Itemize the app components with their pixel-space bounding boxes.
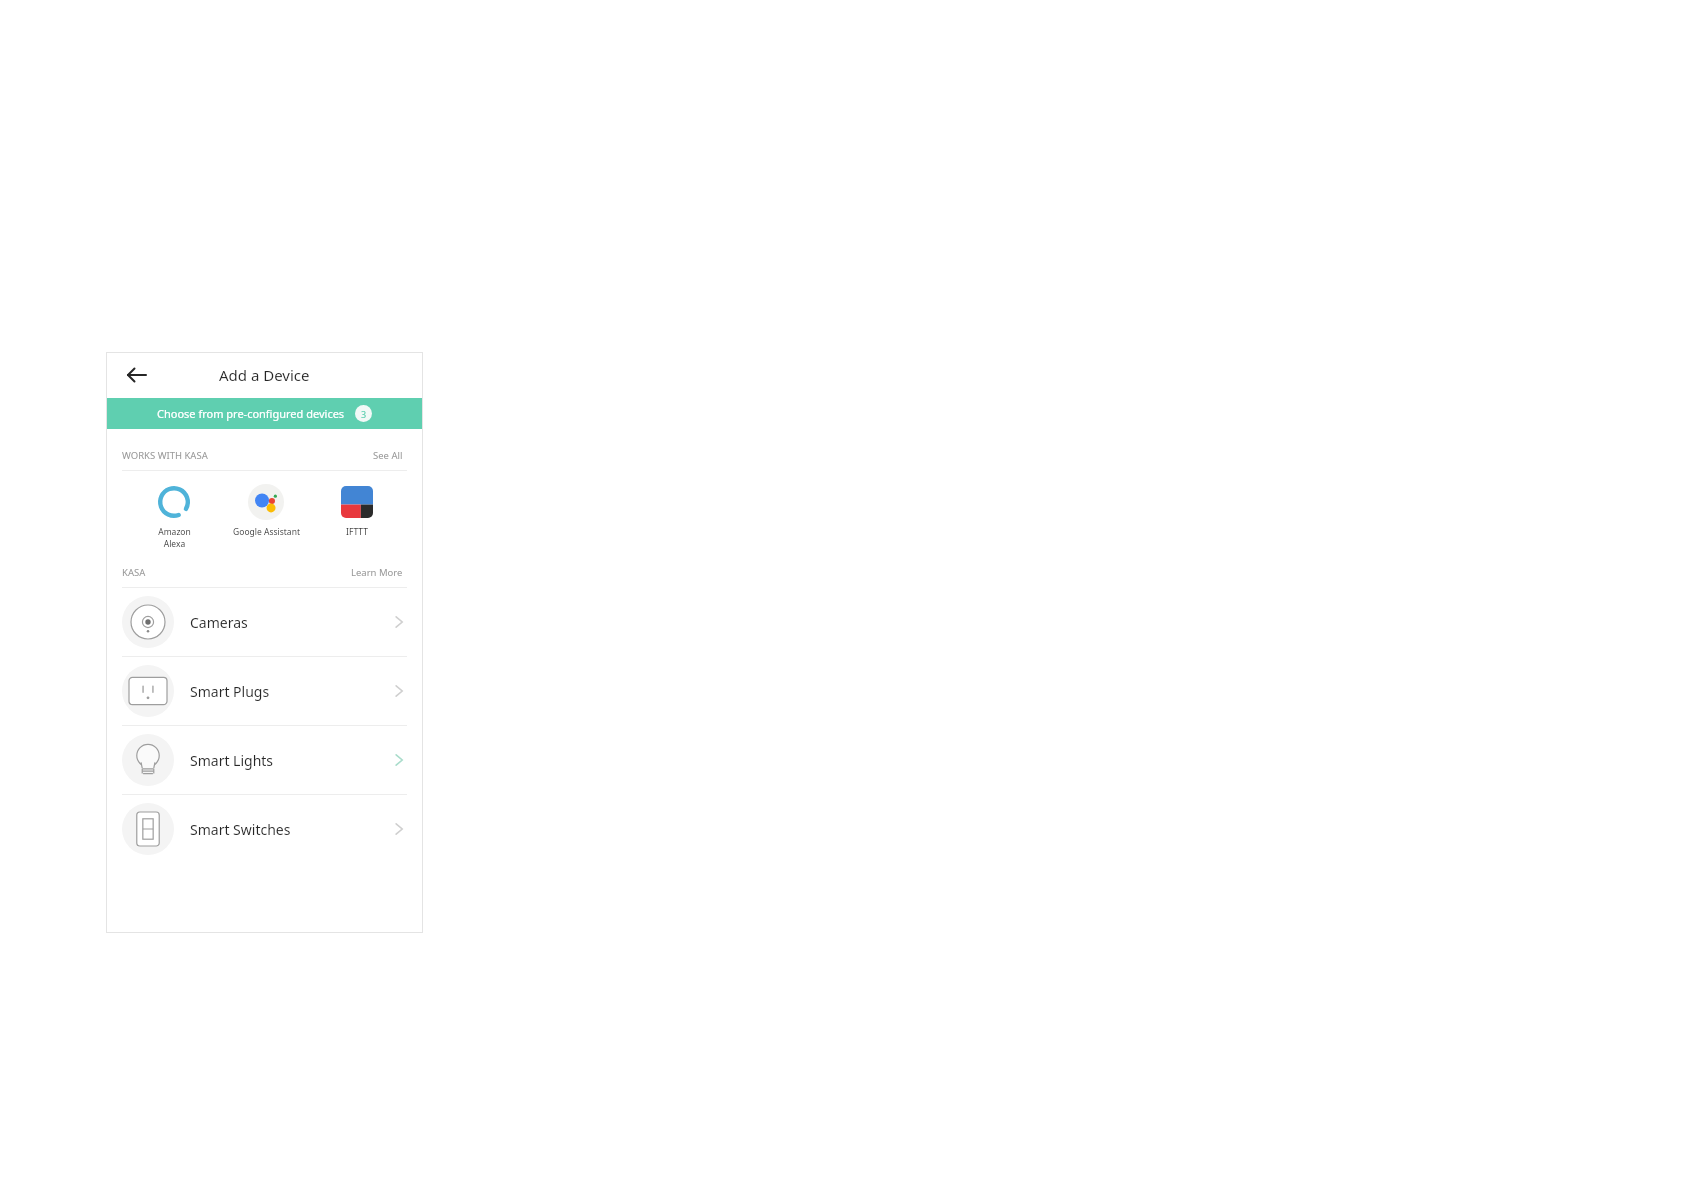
staticText: WORKS WITH KASA: [122, 449, 208, 462]
button[interactable]: Smart Plugs: [106, 657, 423, 725]
staticText: Amazon Alexa: [158, 526, 191, 550]
button[interactable]: Google Assistant: [220, 481, 312, 540]
button[interactable]: Amazon Alexa: [128, 481, 220, 552]
button[interactable]: Back: [120, 358, 154, 392]
staticText: See All: [373, 449, 403, 462]
staticText: Choose from pre-configured devices: [157, 406, 345, 421]
button[interactable]: Smart Switches: [106, 795, 423, 863]
staticText: Learn More: [351, 566, 403, 579]
button[interactable]: IFTTT: [312, 481, 401, 540]
staticText: Cameras: [190, 613, 248, 632]
staticText: Add a Device: [219, 365, 310, 385]
button[interactable]: See All: [369, 445, 407, 466]
staticText: IFTTT: [346, 526, 368, 538]
staticText: Google Assistant: [233, 526, 300, 538]
staticText: Smart Switches: [190, 820, 291, 839]
button[interactable]: Cameras: [106, 588, 423, 656]
staticText: Smart Lights: [190, 751, 274, 770]
button[interactable]: Learn More: [347, 562, 407, 583]
button[interactable]: Choose from pre-configured devices: [106, 398, 423, 429]
staticText: Smart Plugs: [190, 682, 270, 701]
staticText: 3: [361, 408, 367, 420]
staticText: KASA: [122, 566, 146, 579]
button[interactable]: Smart Lights: [106, 726, 423, 794]
